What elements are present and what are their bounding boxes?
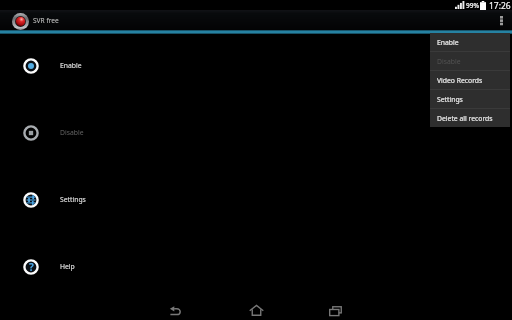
staticText: Settings	[60, 195, 86, 204]
button[interactable]: Settings	[430, 90, 510, 108]
button[interactable]: Recent apps	[321, 294, 351, 320]
button[interactable]: Settings	[0, 192, 512, 208]
button[interactable]: Delete all records	[430, 109, 510, 127]
button[interactable]: Disable	[0, 125, 512, 141]
staticText: Enable	[60, 61, 82, 70]
staticText: SVR free	[33, 16, 59, 25]
staticText: ?	[29, 260, 34, 274]
button[interactable]: Back	[161, 294, 191, 320]
button[interactable]: ?	[0, 259, 512, 275]
staticText: Settings	[437, 95, 463, 104]
staticText: Delete all records	[437, 114, 493, 123]
staticText: Video Records	[437, 76, 483, 85]
staticText: 99%	[466, 1, 479, 10]
staticText: Enable	[437, 38, 459, 47]
button[interactable]: Enable	[430, 33, 510, 51]
button[interactable]: Video Records	[430, 71, 510, 89]
button[interactable]: Disable	[430, 52, 510, 70]
staticText: Disable	[437, 57, 461, 66]
button[interactable]: More options	[490, 10, 512, 30]
staticText: 17:26	[489, 0, 511, 10]
staticText: Help	[60, 262, 75, 271]
button[interactable]: Home	[241, 294, 271, 320]
button[interactable]: Enable	[0, 58, 512, 74]
staticText: Disable	[60, 128, 84, 137]
